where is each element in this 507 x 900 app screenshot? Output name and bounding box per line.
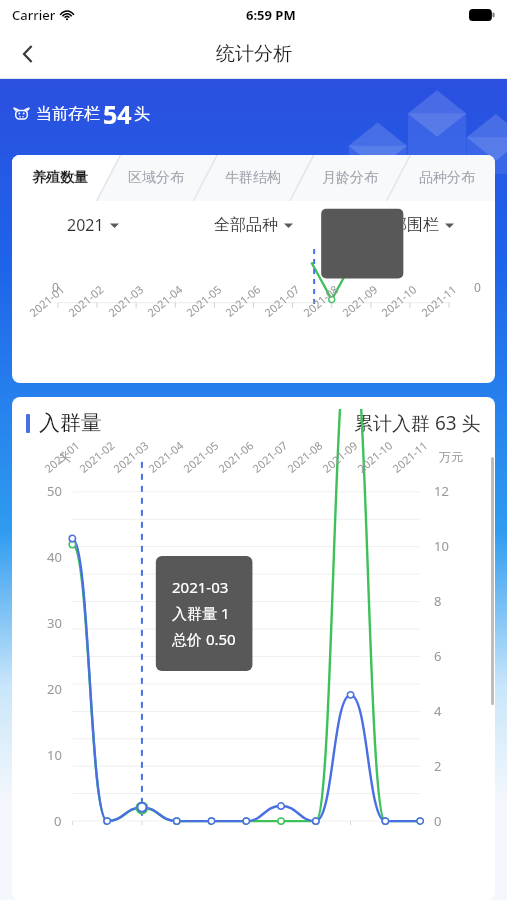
button[interactable]: 区域分布 — [108, 155, 204, 201]
button[interactable]: 2021 — [12, 201, 173, 249]
staticText: 2021-07 — [261, 281, 303, 320]
staticText: 2021-03 — [110, 437, 152, 476]
staticText: 2021-10 — [378, 281, 420, 320]
staticText: 区域分布 — [128, 169, 184, 187]
staticText: 20 — [47, 680, 62, 698]
button[interactable]: 养殖数量 — [12, 155, 108, 201]
staticText: 品种分布 — [419, 169, 475, 187]
staticText: 2021-06 — [222, 281, 264, 320]
staticText: 入群量 1 — [172, 603, 230, 623]
button[interactable]: 全部品种 — [173, 201, 334, 249]
staticText: Carrier — [12, 6, 56, 24]
staticText: 2021-05 — [180, 437, 222, 476]
staticText: 2021-05 — [183, 281, 225, 320]
staticText: 2021-04 — [145, 437, 187, 476]
staticText: 30 — [47, 614, 62, 632]
staticText: 头 — [59, 449, 71, 464]
staticText: 2021-01 — [26, 281, 68, 320]
staticText: 累计入群 63 头 — [354, 410, 481, 436]
staticText: 总价 0.50 — [172, 629, 236, 649]
staticText: 6 — [434, 647, 442, 665]
staticText: 月龄分布 — [322, 169, 378, 187]
staticText: 6:59 PM — [246, 6, 296, 24]
staticText: 8 — [434, 592, 442, 610]
staticText: 入群量 — [39, 410, 102, 436]
staticText: 0 — [434, 812, 442, 830]
staticText: 4 — [434, 702, 442, 720]
staticText: 2021-03 — [172, 577, 229, 597]
staticText: 全部品种 — [214, 215, 278, 235]
staticText: 0 — [54, 812, 62, 830]
staticText: 2021-01 — [41, 437, 83, 476]
staticText: 2021-08 — [300, 281, 342, 320]
staticText: 统计分析 — [216, 42, 292, 66]
button[interactable]: Back — [6, 32, 50, 76]
staticText: 2021-10 — [354, 437, 396, 476]
staticText: 10 — [47, 746, 62, 764]
button[interactable]: 牛群结构 — [204, 155, 301, 201]
staticText: 54 — [103, 97, 132, 131]
staticText: 2021-06 — [215, 437, 257, 476]
staticText: 0 — [474, 279, 481, 295]
staticText: 头 — [134, 104, 150, 124]
staticText: 2021-07 — [249, 437, 291, 476]
staticText: 牛群结构 — [225, 169, 281, 187]
staticText: 全部围栏 — [375, 215, 439, 235]
staticText: 2021-02 — [76, 437, 118, 476]
staticText: 2021-09 — [339, 281, 381, 320]
staticText: 万元 — [439, 449, 463, 464]
staticText: 2021-02 — [65, 281, 107, 320]
button[interactable]: 品种分布 — [398, 155, 495, 201]
staticText: 10 — [434, 537, 449, 555]
staticText: 当前存栏 — [36, 104, 100, 124]
button[interactable]: 全部围栏 — [334, 201, 495, 249]
staticText: 2 — [434, 757, 442, 775]
staticText: 2021-11 — [389, 437, 431, 476]
staticText: 2021 — [67, 214, 104, 236]
staticText: 40 — [47, 548, 62, 566]
staticText: 50 — [47, 482, 62, 500]
button[interactable]: 月龄分布 — [301, 155, 398, 201]
staticText: 2021-11 — [418, 281, 460, 320]
staticText: 2021-08 — [284, 437, 326, 476]
staticText: 2021-09 — [319, 437, 361, 476]
staticText: 0 — [52, 279, 59, 295]
staticText: 养殖数量 — [32, 169, 88, 187]
staticText: 2021-04 — [144, 281, 186, 320]
staticText: 2021-03 — [105, 281, 147, 320]
staticText: 12 — [434, 482, 449, 500]
